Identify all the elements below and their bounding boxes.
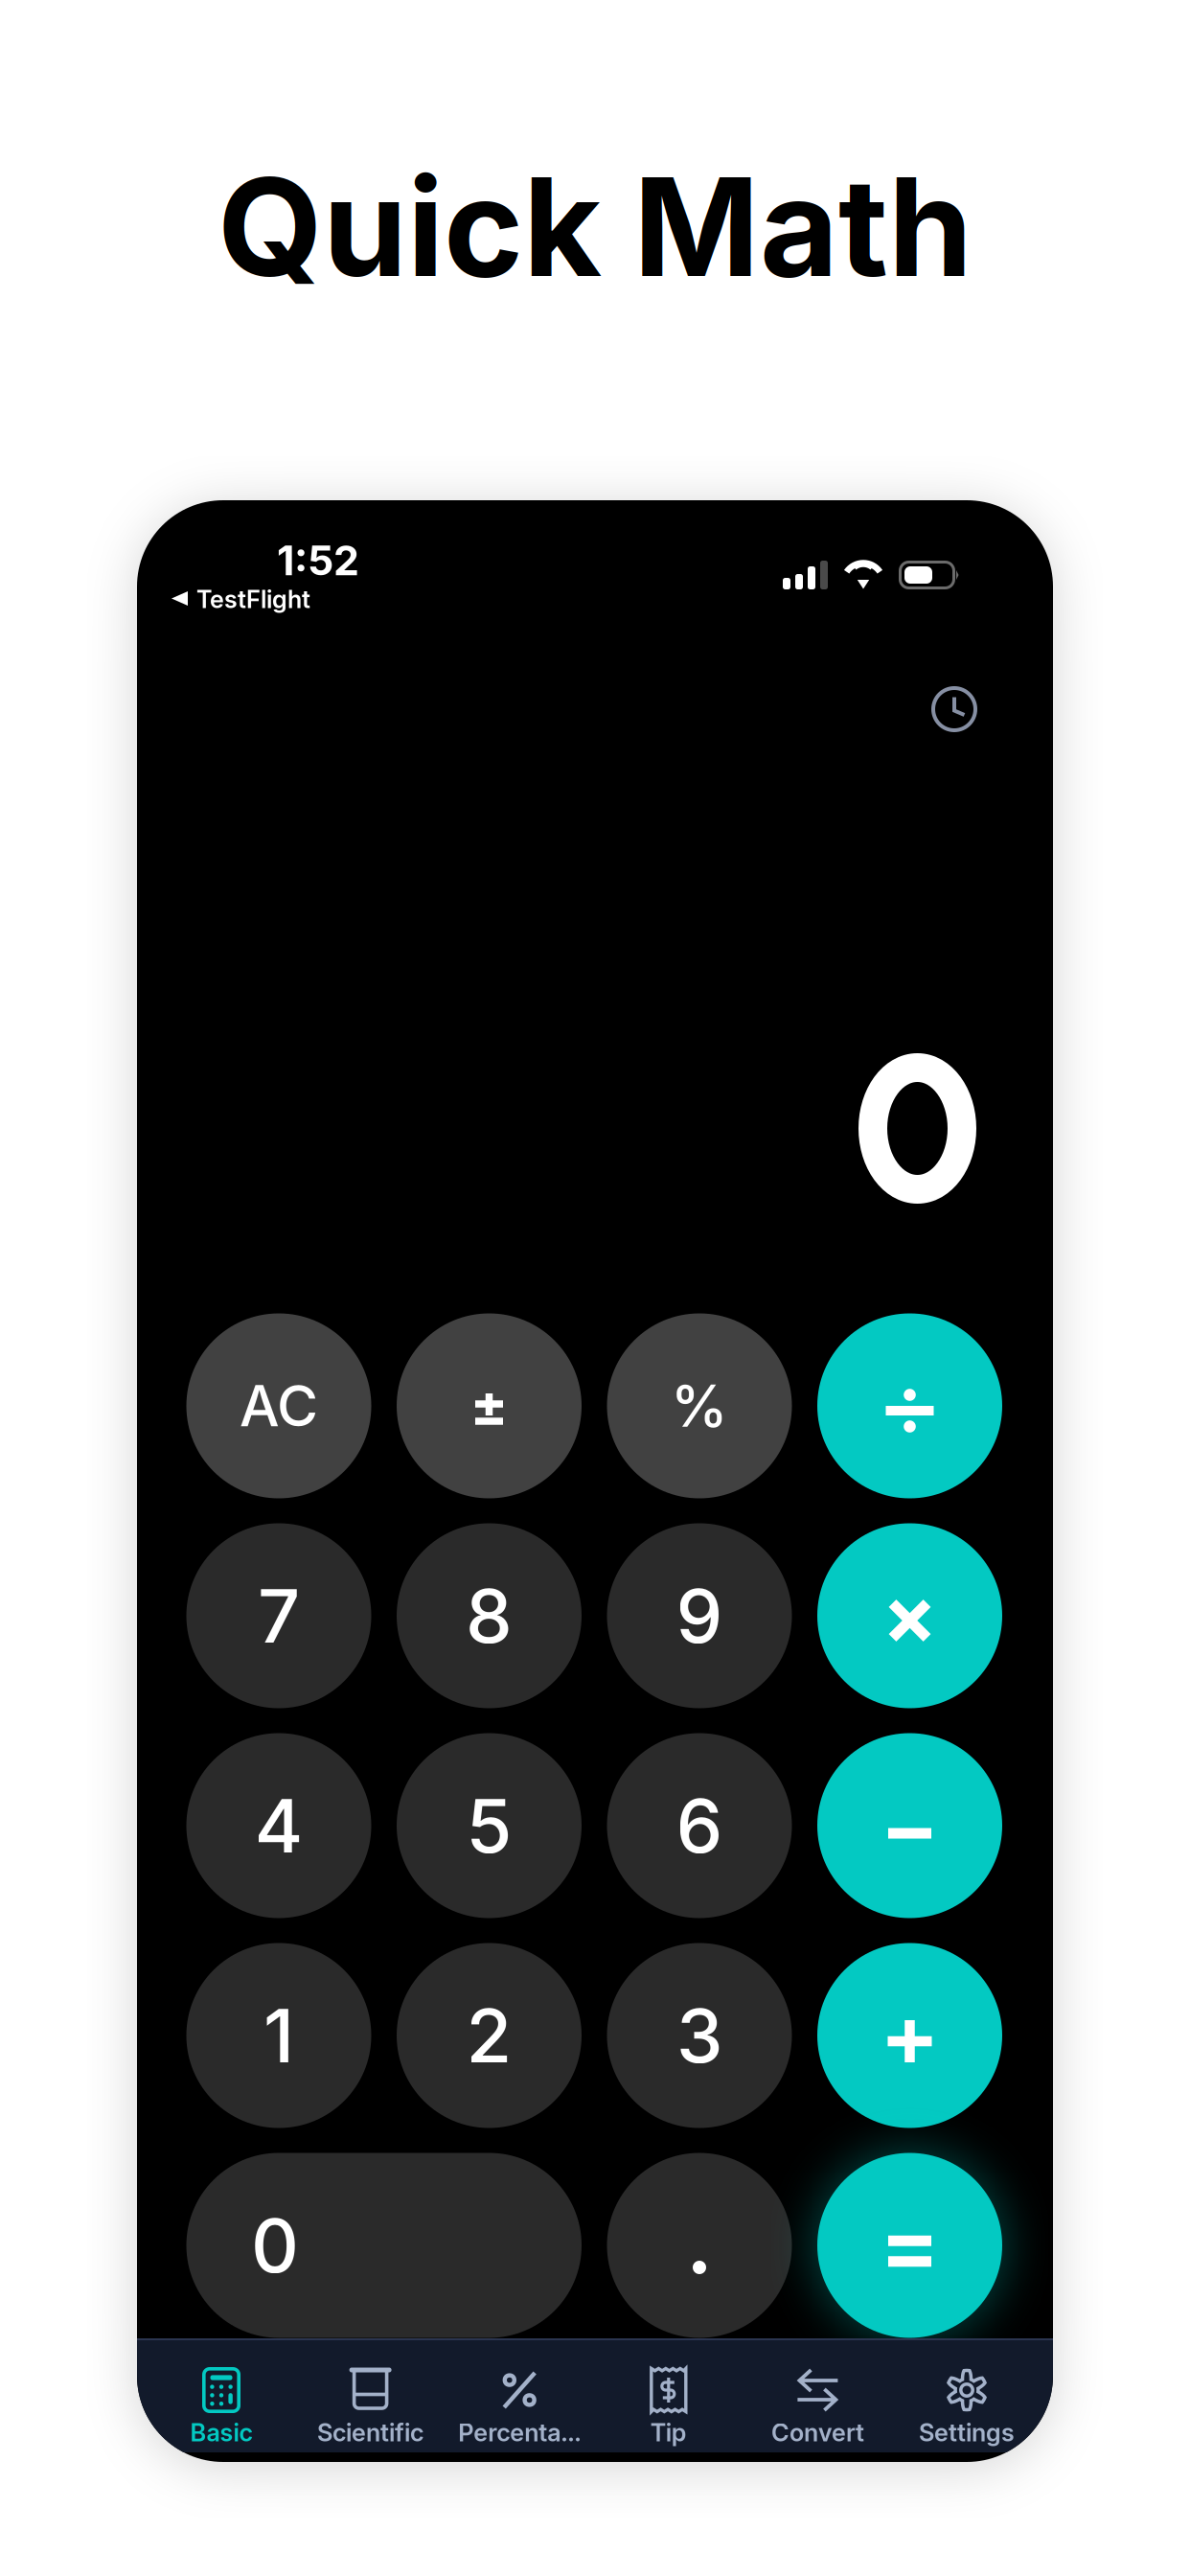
button[interactable]: 6 bbox=[607, 1733, 792, 1918]
staticText: 0 bbox=[251, 2201, 299, 2290]
button[interactable]: 8 bbox=[397, 1523, 582, 1708]
staticText: Scientific bbox=[317, 2418, 424, 2447]
button[interactable]: AC bbox=[186, 1313, 371, 1498]
staticText: 3 bbox=[676, 1991, 722, 2080]
staticText: Basic bbox=[190, 2418, 252, 2447]
staticText: 6 bbox=[676, 1781, 723, 1870]
button[interactable]: History bbox=[912, 667, 996, 751]
button[interactable]: Tip bbox=[594, 2339, 743, 2453]
staticText: 9 bbox=[676, 1571, 723, 1661]
button[interactable]: 1 bbox=[186, 1943, 371, 2128]
button[interactable]: Multiply bbox=[817, 1523, 1002, 1708]
staticText: 5 bbox=[466, 1781, 512, 1870]
button[interactable]: Convert bbox=[743, 2339, 892, 2453]
staticText: Tip bbox=[650, 2418, 687, 2447]
staticText: Quick Math bbox=[217, 145, 973, 309]
button[interactable]: 3 bbox=[607, 1943, 792, 2128]
button[interactable]: Minus bbox=[817, 1733, 1002, 1918]
button[interactable]: Equals bbox=[817, 2153, 1002, 2338]
button[interactable]: Plus bbox=[817, 1943, 1002, 2128]
button[interactable]: Scientific bbox=[296, 2339, 445, 2453]
staticText: Convert bbox=[771, 2418, 864, 2447]
button[interactable]: 2 bbox=[397, 1943, 582, 2128]
button[interactable]: % bbox=[607, 1313, 792, 1498]
button[interactable]: 7 bbox=[186, 1523, 371, 1708]
staticText: Settings bbox=[919, 2418, 1015, 2447]
staticText: TestFlight bbox=[196, 585, 310, 614]
button[interactable]: Percenta... bbox=[445, 2339, 594, 2453]
staticText: Percenta... bbox=[458, 2418, 581, 2447]
button[interactable]: Settings bbox=[892, 2339, 1041, 2453]
button[interactable]: Decimal point bbox=[607, 2153, 792, 2338]
button[interactable]: Basic bbox=[147, 2339, 296, 2453]
staticText: 2 bbox=[466, 1991, 512, 2080]
button[interactable]: 0 bbox=[186, 2153, 582, 2338]
button[interactable]: 5 bbox=[397, 1733, 582, 1918]
staticText: AC bbox=[240, 1372, 318, 1440]
button[interactable]: Divide bbox=[817, 1313, 1002, 1498]
button[interactable]: 9 bbox=[607, 1523, 792, 1708]
staticText: 8 bbox=[466, 1571, 513, 1661]
button[interactable]: 4 bbox=[186, 1733, 371, 1918]
staticText: 4 bbox=[254, 1781, 303, 1870]
staticText: % bbox=[671, 1371, 728, 1441]
staticText: 1 bbox=[263, 1991, 294, 2080]
staticText: 7 bbox=[258, 1571, 300, 1661]
button[interactable]: Plus minus bbox=[397, 1313, 582, 1498]
staticText: 1:52 bbox=[277, 536, 359, 585]
